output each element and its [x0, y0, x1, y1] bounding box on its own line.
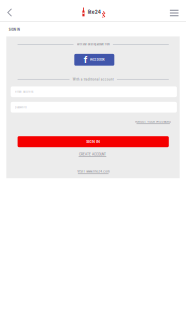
- staticText: CREATE ACCOUNT: [79, 153, 106, 156]
- button[interactable]: CREATE ACCOUNT: [79, 153, 106, 157]
- staticText: SIGN IN: [9, 28, 20, 31]
- staticText: With your existing account from: [77, 43, 110, 46]
- staticText: With a traditional account: [73, 78, 114, 81]
- button[interactable]: VISIT www.lite24.com: [77, 170, 109, 174]
- button[interactable]: f: [74, 54, 114, 66]
- staticText: f: [84, 54, 88, 65]
- button[interactable]: Menu: [168, 7, 180, 19]
- staticText: FACEBOOK: [90, 58, 105, 62]
- staticText: VISIT www.lite24.com: [77, 170, 109, 173]
- button[interactable]: password: [11, 102, 177, 113]
- staticText: SIGN IN: [86, 140, 100, 144]
- button[interactable]: SIGN IN: [18, 136, 169, 147]
- button[interactable]: email address: [11, 86, 177, 97]
- staticText: password: [15, 106, 27, 109]
- staticText: lite24: [88, 9, 101, 15]
- button[interactable]: Back: [3, 6, 16, 19]
- staticText: FORGOT YOUR PASSWORD: [135, 120, 171, 123]
- staticText: email address: [15, 90, 33, 93]
- button[interactable]: FORGOT YOUR PASSWORD: [135, 120, 171, 124]
